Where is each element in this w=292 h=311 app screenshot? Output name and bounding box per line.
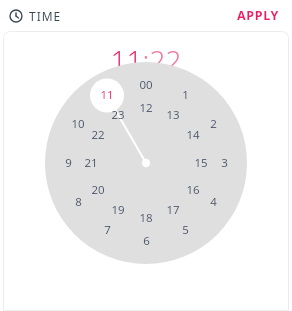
button[interactable]: 10: [66, 112, 90, 136]
button[interactable]: 1: [173, 83, 197, 107]
staticText: 4: [210, 194, 217, 210]
staticText: APPLY: [237, 7, 280, 24]
staticText: 13: [166, 107, 180, 123]
staticText: 7: [104, 222, 111, 238]
button[interactable]: 11: [95, 83, 119, 107]
staticText: 1: [182, 87, 189, 103]
button[interactable]: 23: [106, 103, 130, 127]
staticText: 14: [186, 127, 200, 143]
button[interactable]: 00: [134, 73, 158, 97]
button[interactable]: 3: [212, 151, 236, 175]
staticText: 3: [221, 155, 228, 171]
staticText: 2: [210, 116, 217, 132]
staticText: 10: [71, 116, 85, 132]
button[interactable]: 18: [134, 206, 158, 230]
staticText: 12: [139, 100, 153, 116]
staticText: 18: [139, 210, 153, 226]
staticText: 9: [65, 155, 72, 171]
staticText: 22: [91, 127, 105, 143]
staticText: 16: [186, 182, 200, 198]
button[interactable]: 15: [189, 151, 213, 175]
button[interactable]: 6: [134, 229, 158, 253]
staticText: 21: [84, 155, 98, 171]
staticText: 15: [194, 155, 208, 171]
button[interactable]: 8: [66, 190, 90, 214]
button[interactable]: 7: [95, 218, 119, 242]
other: Time: [9, 9, 23, 23]
button[interactable]: 21: [79, 151, 103, 175]
staticText: 17: [166, 202, 180, 218]
button[interactable]: 9: [56, 151, 80, 175]
button[interactable]: 20: [86, 178, 110, 202]
button[interactable]: 5: [173, 218, 197, 242]
button[interactable]: 13: [161, 103, 185, 127]
staticText: 8: [75, 194, 82, 210]
staticText: 11:22: [3, 41, 289, 79]
button[interactable]: 2: [201, 112, 225, 136]
staticText: 00: [139, 77, 153, 93]
button[interactable]: 12: [134, 96, 158, 120]
button[interactable]: 17: [161, 198, 185, 222]
button[interactable]: 19: [106, 198, 130, 222]
button[interactable]: Time: [7, 6, 64, 26]
staticText: 11: [100, 87, 114, 103]
button[interactable]: APPLY: [234, 4, 283, 27]
staticText: 19: [111, 202, 125, 218]
button[interactable]: 16: [181, 178, 205, 202]
button[interactable]: 4: [201, 190, 225, 214]
staticText: 23: [111, 107, 125, 123]
staticText: 20: [91, 182, 105, 198]
button[interactable]: 14: [181, 123, 205, 147]
button[interactable]: 22: [86, 123, 110, 147]
staticText: TIME: [29, 8, 62, 24]
staticText: 5: [182, 222, 189, 238]
staticText: 6: [143, 233, 150, 249]
